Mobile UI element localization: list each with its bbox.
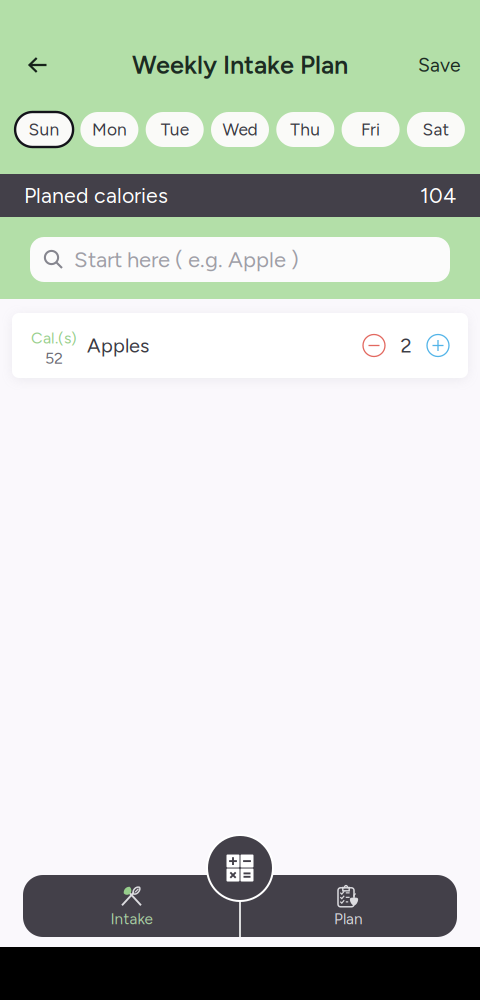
staticText: 52 <box>45 348 63 368</box>
staticText: Sat <box>422 119 449 140</box>
staticText: 104 <box>420 183 456 208</box>
staticText: Fri <box>361 119 380 140</box>
button[interactable]: Mon <box>80 112 138 147</box>
staticText: Thu <box>290 119 320 140</box>
button[interactable]: Wed <box>211 112 269 147</box>
button[interactable]: Save <box>412 43 467 87</box>
button[interactable]: Intake <box>23 875 240 937</box>
staticText: Mon <box>92 119 127 140</box>
button[interactable]: Plan <box>240 875 457 937</box>
button[interactable]: Sat <box>407 112 465 147</box>
staticText: Save <box>418 53 461 77</box>
button[interactable]: Sun <box>15 112 73 147</box>
button[interactable]: Decrease quantity <box>362 333 386 357</box>
button[interactable]: Fri <box>342 112 400 147</box>
button[interactable]: Calculator <box>207 835 273 901</box>
button[interactable]: Thu <box>276 112 334 147</box>
staticText: Start here ( e.g. Apple ) <box>74 246 299 273</box>
staticText: Wed <box>222 119 257 140</box>
button[interactable]: Back <box>16 43 60 87</box>
staticText: Weekly Intake Plan <box>132 50 348 80</box>
staticText: Plan <box>334 910 363 928</box>
staticText: Apples <box>87 333 149 357</box>
staticText: Tue <box>161 119 189 140</box>
staticText: Sun <box>29 119 60 140</box>
button[interactable]: Tue <box>146 112 204 147</box>
button[interactable]: Increase quantity <box>426 333 450 357</box>
staticText: Planed calories <box>24 183 168 208</box>
staticText: Intake <box>110 910 152 928</box>
staticText: 2 <box>400 333 411 357</box>
staticText: Cal.(s) <box>31 328 77 347</box>
